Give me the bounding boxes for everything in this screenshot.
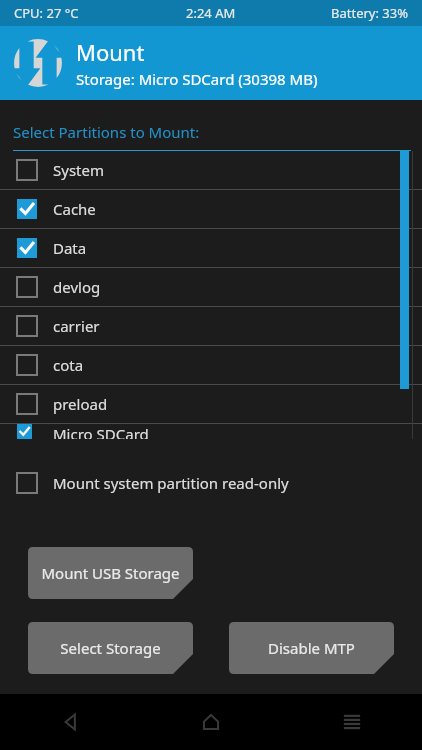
staticText: devlog: [53, 277, 101, 297]
staticText: Mount USB Storage: [41, 563, 180, 583]
staticText: 2:24 AM: [186, 4, 236, 22]
staticText: preload: [53, 394, 108, 414]
staticText: Battery: 33%: [331, 4, 408, 22]
staticText: CPU: 27 °C: [14, 4, 79, 22]
button[interactable]: Data: [0, 229, 422, 267]
button[interactable]: Micro SDCard: [0, 424, 422, 439]
button[interactable]: devlog: [0, 268, 422, 306]
button[interactable]: preload: [0, 385, 422, 423]
staticText: System: [53, 160, 104, 180]
button[interactable]: Menu: [281, 694, 422, 750]
button[interactable]: Select Storage: [28, 622, 193, 674]
staticText: Select Storage: [60, 638, 161, 658]
button[interactable]: carrier: [0, 307, 422, 345]
staticText: carrier: [53, 316, 100, 336]
staticText: Mount: [76, 37, 145, 67]
button[interactable]: cota: [0, 346, 422, 384]
staticText: Storage: Micro SDCard (30398 MB): [76, 69, 318, 89]
staticText: Data: [53, 238, 87, 258]
staticText: Micro SDCard: [53, 424, 149, 439]
button[interactable]: System: [0, 151, 422, 189]
staticText: Cache: [53, 199, 96, 219]
staticText: Disable MTP: [268, 638, 355, 658]
staticText: cota: [53, 355, 84, 375]
staticText: Select Partitions to Mount:: [13, 122, 200, 142]
button[interactable]: Disable MTP: [229, 622, 394, 674]
button[interactable]: Mount USB Storage: [28, 547, 193, 599]
staticText: Mount system partition read-only: [53, 473, 289, 493]
button[interactable]: Back: [0, 694, 140, 750]
button[interactable]: Home: [140, 694, 281, 750]
button[interactable]: Cache: [0, 190, 422, 228]
button[interactable]: Mount system partition read-only: [0, 464, 422, 502]
